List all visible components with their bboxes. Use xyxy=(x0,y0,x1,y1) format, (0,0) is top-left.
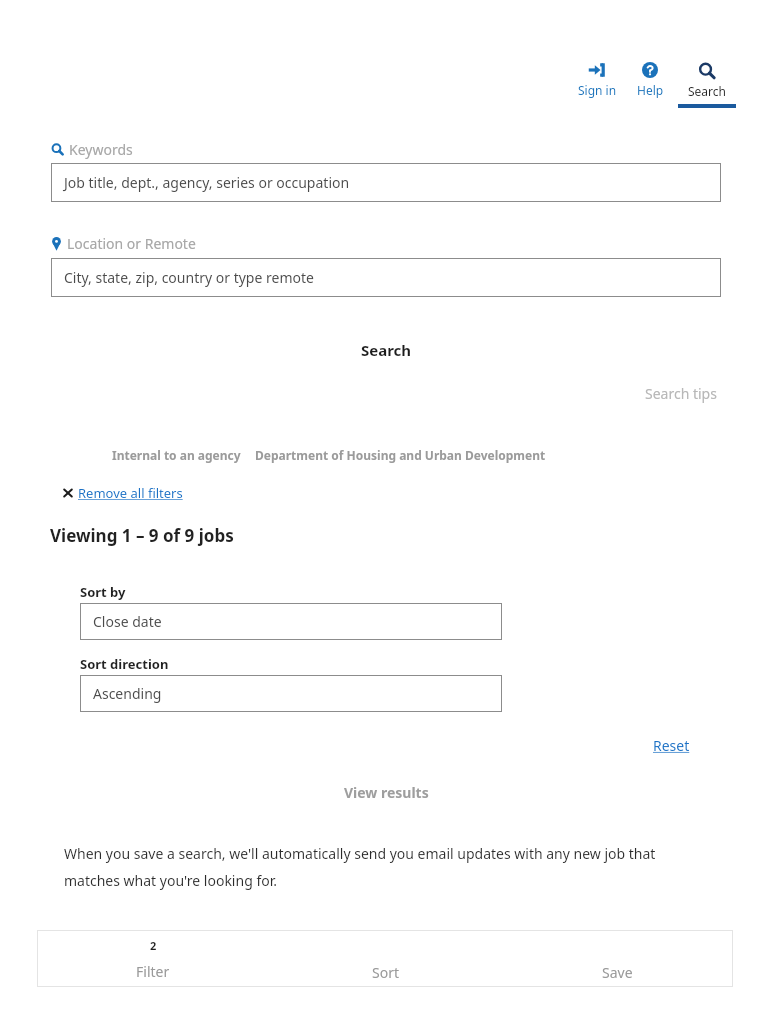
staticText: Sort by xyxy=(80,583,126,601)
staticText: Job title, dept., agency, series or occu… xyxy=(64,173,350,192)
staticText: Close date xyxy=(93,612,162,631)
staticText: Search xyxy=(361,340,412,360)
button[interactable]: Sort xyxy=(269,930,501,987)
button[interactable]: City, state, zip, country or type remote xyxy=(51,258,721,297)
staticText: 2 xyxy=(150,938,157,953)
button[interactable]: View results xyxy=(300,779,472,805)
staticText: When you save a search, we'll automatica… xyxy=(64,844,656,863)
button[interactable]: Sign in xyxy=(570,60,624,100)
button[interactable]: Close date xyxy=(80,603,502,640)
staticText: Remove all filters xyxy=(78,484,183,502)
button[interactable]: Job title, dept., agency, series or occu… xyxy=(51,163,721,202)
button[interactable]: Save xyxy=(501,930,733,987)
button[interactable]: Search xyxy=(676,60,738,108)
button[interactable]: Help xyxy=(624,60,676,100)
button[interactable]: Department of Housing and Urban Developm… xyxy=(251,445,550,465)
staticText: Keywords xyxy=(69,140,133,159)
button[interactable]: Internal to an agency xyxy=(108,445,245,465)
staticText: Sort xyxy=(372,963,399,982)
button[interactable]: Search xyxy=(300,336,472,364)
staticText: Sort direction xyxy=(80,655,169,673)
button[interactable]: Remove all filters xyxy=(63,482,183,504)
staticText: matches what you're looking for. xyxy=(64,871,277,890)
staticText: Ascending xyxy=(93,684,162,703)
staticText: Save xyxy=(602,963,633,982)
staticText: City, state, zip, country or type remote xyxy=(64,268,314,287)
staticText: Reset xyxy=(653,736,690,755)
staticText: Filter xyxy=(136,962,170,981)
staticText: Sign in xyxy=(578,82,617,98)
button[interactable]: 2 xyxy=(37,930,269,987)
staticText: Internal to an agency xyxy=(112,447,241,463)
staticText: Help xyxy=(637,82,664,98)
staticText: Location or Remote xyxy=(67,234,196,253)
staticText: Viewing 1 – 9 of 9 jobs xyxy=(50,524,234,547)
staticText: View results xyxy=(344,783,429,802)
staticText: Department of Housing and Urban Developm… xyxy=(255,447,546,463)
button[interactable]: Reset xyxy=(650,733,693,758)
staticText: Search tips xyxy=(645,384,717,403)
button[interactable]: Search tips xyxy=(643,382,719,405)
staticText: Search xyxy=(688,83,726,99)
button[interactable]: Ascending xyxy=(80,675,502,712)
